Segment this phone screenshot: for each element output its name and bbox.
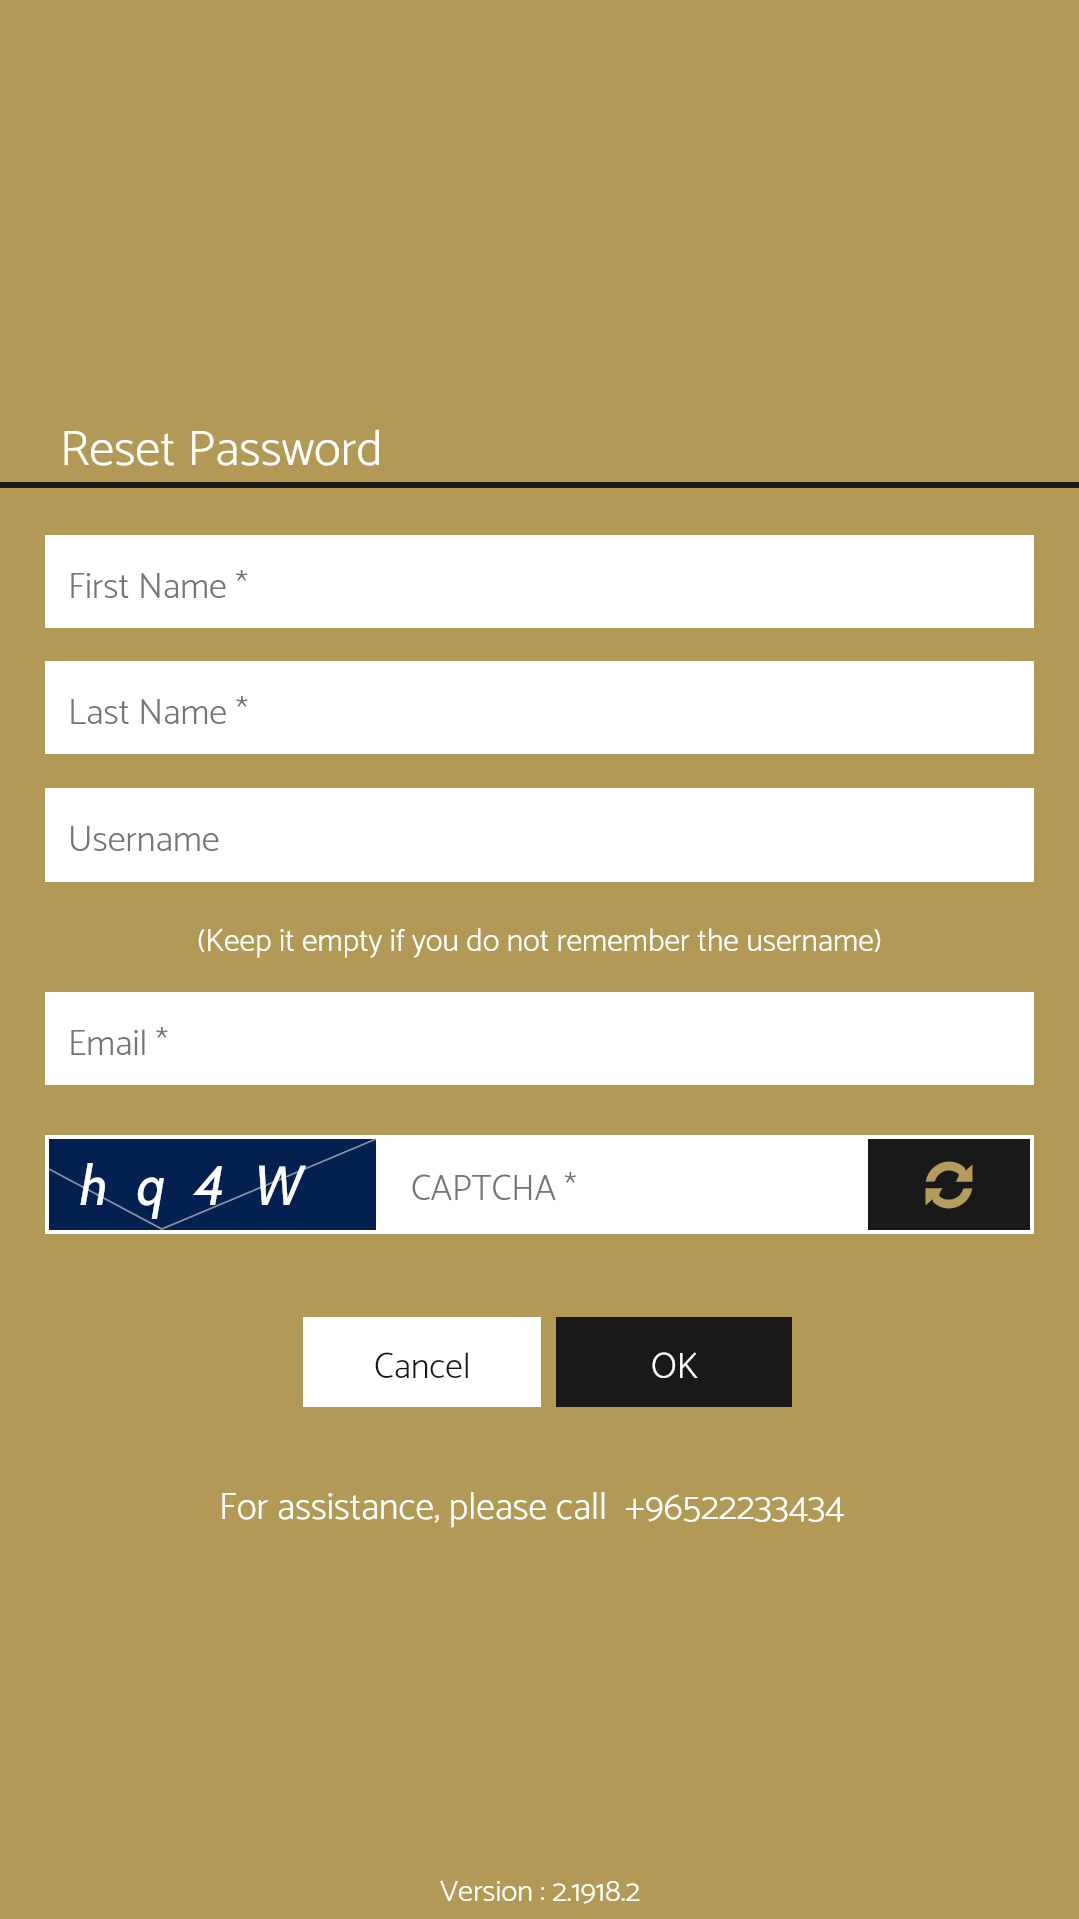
staticText: First Name * xyxy=(68,558,248,618)
staticText: Version : 2.1918.2 xyxy=(440,1867,640,1917)
staticText: Last Name * xyxy=(68,684,249,744)
button[interactable]: Cancel xyxy=(303,1317,541,1407)
staticText: Username xyxy=(68,811,220,871)
button[interactable]: OK xyxy=(556,1317,792,1407)
other: CAPTCHA image xyxy=(49,1139,376,1230)
staticText: OK xyxy=(651,1339,698,1397)
staticText: (Keep it empty if you do not remember th… xyxy=(197,916,882,968)
staticText: Reset Password xyxy=(60,409,383,492)
button[interactable]: First Name * xyxy=(45,535,1034,628)
staticText: Email * xyxy=(68,1015,169,1075)
button[interactable]: CAPTCHA * xyxy=(376,1139,868,1230)
button[interactable]: Username xyxy=(45,788,1034,882)
staticText: For assistance, please call +96522233434 xyxy=(219,1478,845,1540)
staticText: CAPTCHA * xyxy=(411,1161,577,1220)
button[interactable]: Refresh captcha xyxy=(868,1139,1030,1230)
staticText: Cancel xyxy=(374,1339,471,1397)
button[interactable]: Last Name * xyxy=(45,661,1034,754)
button[interactable]: Email * xyxy=(45,992,1034,1085)
staticText: h q 4 W xyxy=(80,1152,306,1219)
